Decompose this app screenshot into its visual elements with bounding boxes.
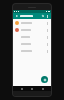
button[interactable]: Add group [41, 76, 48, 83]
button[interactable]: Recent apps [41, 87, 45, 91]
button[interactable]: Row options [13, 19, 51, 26]
button[interactable]: Row options [45, 49, 49, 53]
button[interactable]: Row options [45, 35, 49, 39]
button[interactable]: Row options [45, 21, 49, 25]
button[interactable]: Row options [13, 26, 51, 33]
button[interactable]: Row options [13, 33, 51, 40]
button[interactable]: Home [30, 87, 34, 91]
button[interactable]: Row options [45, 42, 49, 46]
button[interactable]: Back [20, 87, 24, 91]
button[interactable]: More options [45, 14, 49, 18]
button[interactable]: Row options [13, 47, 51, 54]
button[interactable]: Row options [45, 28, 49, 32]
button[interactable]: Back [15, 14, 19, 18]
button[interactable]: Search [41, 14, 45, 18]
button[interactable]: Row options [13, 40, 51, 47]
